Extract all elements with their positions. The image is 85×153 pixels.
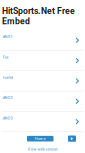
staticText: dNO1 xyxy=(2,34,12,39)
button[interactable]: Foxhd xyxy=(0,71,85,91)
staticText: dNO3 xyxy=(2,116,12,120)
staticText: Foxhd xyxy=(2,75,12,80)
staticText: View web version xyxy=(27,147,57,151)
button[interactable]: Older posts xyxy=(68,136,76,142)
button[interactable]: View web version xyxy=(27,147,57,151)
staticText: Home xyxy=(35,136,46,141)
button[interactable]: Home xyxy=(27,136,53,141)
staticText: Fox xyxy=(2,55,8,59)
button[interactable]: Fox xyxy=(0,51,85,71)
staticText: dNO2 xyxy=(2,95,12,100)
button[interactable]: dNO1 xyxy=(0,30,85,51)
button[interactable]: dNO3 xyxy=(0,112,85,132)
button[interactable]: dNO2 xyxy=(0,91,85,112)
staticText: HitSports.Net Free Embed xyxy=(2,6,75,26)
